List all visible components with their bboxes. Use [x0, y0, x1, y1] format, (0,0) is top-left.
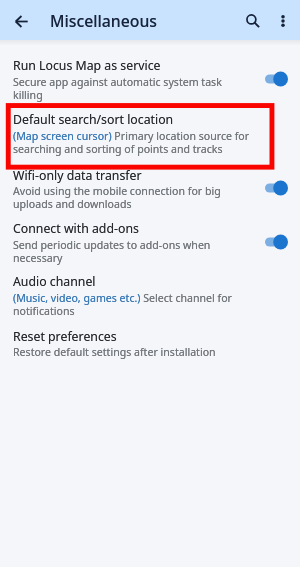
staticText: Audio channel: [13, 273, 96, 290]
button[interactable]: Connect with add-ons: [0, 212, 300, 266]
staticText: Miscellaneous: [50, 10, 158, 32]
staticText: Send periodic updates to add-ons when ne…: [13, 238, 254, 265]
staticText: (Map screen cursor) Primary location sou…: [13, 129, 254, 156]
button[interactable]: Reset preferences: [0, 320, 300, 372]
staticText: Default search/sort location: [13, 111, 174, 128]
staticText: Default search/sort location: [13, 111, 174, 128]
button[interactable]: Run Locus Map as service: [0, 48, 300, 103]
button[interactable]: Audio channel: [0, 266, 300, 320]
staticText: Connect with add-ons: [13, 220, 139, 237]
staticText: Restore default settings after installat…: [13, 345, 254, 359]
staticText: Wifi-only data transfer: [13, 167, 142, 184]
staticText: (Music, video, games etc.) Select channe…: [13, 291, 254, 318]
staticText: Run Locus Map as service: [13, 57, 161, 74]
staticText: Send periodic updates to add-ons when ne…: [13, 238, 254, 265]
staticText: Run Locus Map as service: [13, 57, 161, 74]
staticText: (Map screen cursor) Primary location sou…: [13, 129, 254, 156]
button[interactable]: Search: [240, 8, 266, 34]
staticText: Miscellaneous: [50, 10, 158, 32]
staticText: Audio channel: [13, 273, 96, 290]
staticText: (Music, video, games etc.) Select channe…: [13, 291, 254, 318]
button[interactable]: Back: [9, 9, 33, 33]
button[interactable]: Default search/sort location: [0, 103, 300, 158]
staticText: Reset preferences: [13, 328, 117, 345]
staticText: Wifi-only data transfer: [13, 167, 142, 184]
staticText: Reset preferences: [13, 328, 117, 345]
staticText: Restore default settings after installat…: [13, 345, 254, 359]
staticText: Secure app against automatic system task…: [13, 75, 254, 102]
staticText: Avoid using the mobile connection for bi…: [13, 184, 254, 211]
button[interactable]: Wifi-only data transfer: [0, 158, 300, 212]
staticText: Secure app against automatic system task…: [13, 75, 254, 102]
button[interactable]: More options: [272, 8, 294, 34]
staticText: Avoid using the mobile connection for bi…: [13, 184, 254, 211]
staticText: Connect with add-ons: [13, 220, 139, 237]
